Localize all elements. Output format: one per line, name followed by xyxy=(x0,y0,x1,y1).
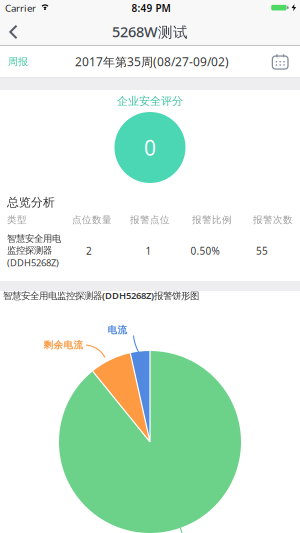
staticText: 55 xyxy=(256,244,268,258)
staticText: 0.50% xyxy=(190,244,219,258)
staticText: 报警点位 xyxy=(130,214,170,226)
staticText: 剩余电流 xyxy=(43,339,83,351)
button[interactable]: 周报 xyxy=(0,47,28,76)
staticText: 8:49 PM xyxy=(131,1,170,15)
staticText: 2017年第35周(08/27-09/02) xyxy=(75,53,229,70)
staticText: 报警比例 xyxy=(192,214,232,226)
staticText: 0 xyxy=(144,133,156,162)
staticText: 类型 xyxy=(7,214,27,226)
staticText: 智慧安全用电监控探测器(DDH5268Z)报警饼形图 xyxy=(3,289,199,302)
staticText: 2 xyxy=(86,244,92,258)
staticText: 总览分析 xyxy=(7,195,55,210)
staticText: 企业安全评分 xyxy=(117,94,183,108)
button[interactable]: 选择日期 xyxy=(272,48,300,76)
staticText: 报警次数 xyxy=(253,214,293,226)
staticText: 智慧安全用电监控探测器(DDH5268Z) xyxy=(7,233,61,269)
button[interactable]: Back xyxy=(0,20,18,45)
staticText: 电流 xyxy=(107,324,127,336)
staticText: 点位数量 xyxy=(72,214,112,226)
staticText: 5268W测试 xyxy=(112,22,188,41)
staticText: 1 xyxy=(145,244,151,258)
staticText: 周报 xyxy=(8,55,28,68)
staticText: Carrier xyxy=(5,1,36,15)
